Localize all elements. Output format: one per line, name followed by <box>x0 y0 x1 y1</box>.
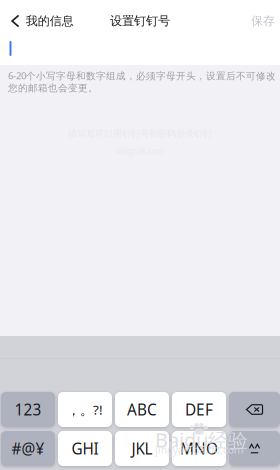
staticText: ABC <box>127 399 157 420</box>
button[interactable]: MNO <box>172 431 226 466</box>
staticText: #@¥ <box>11 438 44 459</box>
staticText: GHI <box>71 438 98 459</box>
button[interactable]: GHI <box>58 431 112 466</box>
button[interactable]: 保存 <box>246 0 280 42</box>
button[interactable]: Shift <box>229 431 280 466</box>
button[interactable]: JKL <box>115 431 169 466</box>
button[interactable]: ，。?! <box>58 392 112 427</box>
staticText: jingyan.baidu.com <box>155 443 243 457</box>
staticText: 您的邮箱也会变更。 <box>8 82 98 94</box>
staticText: 保存 <box>251 13 275 28</box>
staticText: ，。?! <box>67 400 103 419</box>
staticText: JKL <box>131 438 152 459</box>
staticText: Baidu经验 <box>155 426 248 453</box>
button[interactable]: ABC <box>115 392 169 427</box>
staticText: 123 <box>14 399 41 420</box>
button[interactable]: 我的信息 <box>0 0 81 42</box>
staticText: 我的信息 <box>26 13 74 28</box>
button[interactable]: #@¥ <box>1 431 55 466</box>
button[interactable]: Delete <box>229 392 280 427</box>
staticText: 设置钉钉号 <box>110 13 170 29</box>
button[interactable]: DEF <box>172 392 226 427</box>
staticText: DEF <box>185 399 213 420</box>
staticText: 6-20个小写字母和数字组成，必须字母开头，设置后不可修改， <box>8 69 280 82</box>
button[interactable]: 123 <box>1 392 55 427</box>
staticText: MNO <box>180 438 218 459</box>
